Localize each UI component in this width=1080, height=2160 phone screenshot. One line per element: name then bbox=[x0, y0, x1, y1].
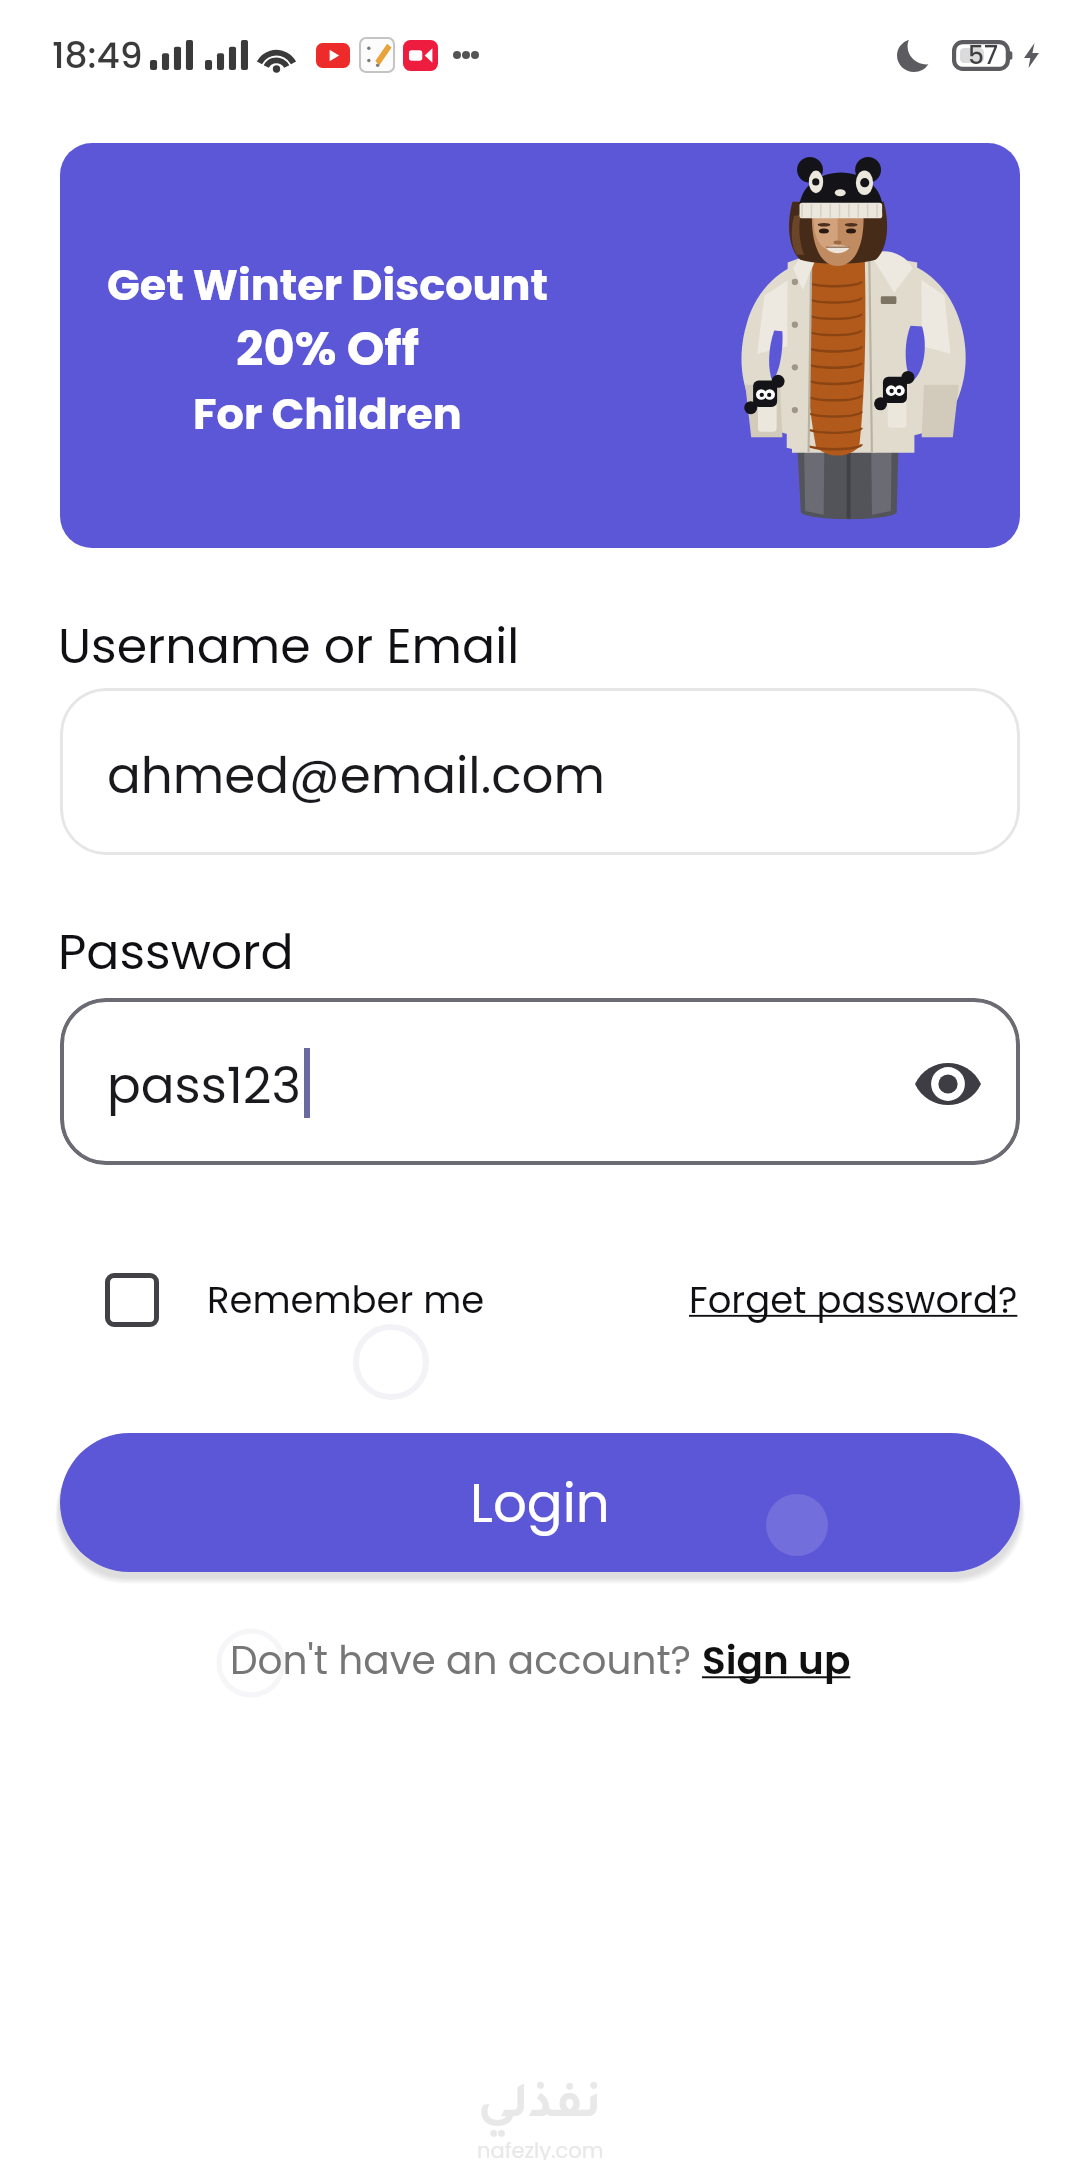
staticText: ahmed@email.com bbox=[107, 741, 605, 811]
staticText: Remember me bbox=[207, 1274, 485, 1326]
staticText: Forget password? bbox=[689, 1274, 1018, 1326]
staticText: Get Winter Discount bbox=[107, 255, 548, 315]
button[interactable]: Forget password? bbox=[689, 1258, 1018, 1342]
button[interactable]: Show password bbox=[908, 1044, 988, 1124]
staticText: Don't have an account? bbox=[230, 1633, 702, 1688]
staticText: 20% Off bbox=[236, 315, 419, 382]
staticText: Sign up bbox=[702, 1633, 851, 1688]
staticText: pass123 bbox=[107, 1051, 301, 1121]
button[interactable]: Sign up bbox=[702, 1628, 851, 1692]
button[interactable]: Login bbox=[60, 1433, 1020, 1572]
staticText: 18:49 bbox=[52, 30, 143, 80]
staticText: Username or Email bbox=[58, 612, 520, 681]
button[interactable]: Get Winter Discount bbox=[60, 143, 1020, 548]
staticText: nafezly.com bbox=[477, 2136, 604, 2160]
staticText: Login bbox=[470, 1466, 610, 1540]
button[interactable]: ahmed@email.com bbox=[60, 688, 1020, 855]
staticText: Password bbox=[58, 918, 294, 987]
button[interactable]: Remember me bbox=[62, 1258, 485, 1342]
button[interactable]: pass123 bbox=[60, 998, 1020, 1165]
staticText: نفذلي bbox=[478, 2084, 602, 2134]
staticText: 57 bbox=[968, 38, 998, 73]
staticText: For Children bbox=[193, 384, 462, 444]
